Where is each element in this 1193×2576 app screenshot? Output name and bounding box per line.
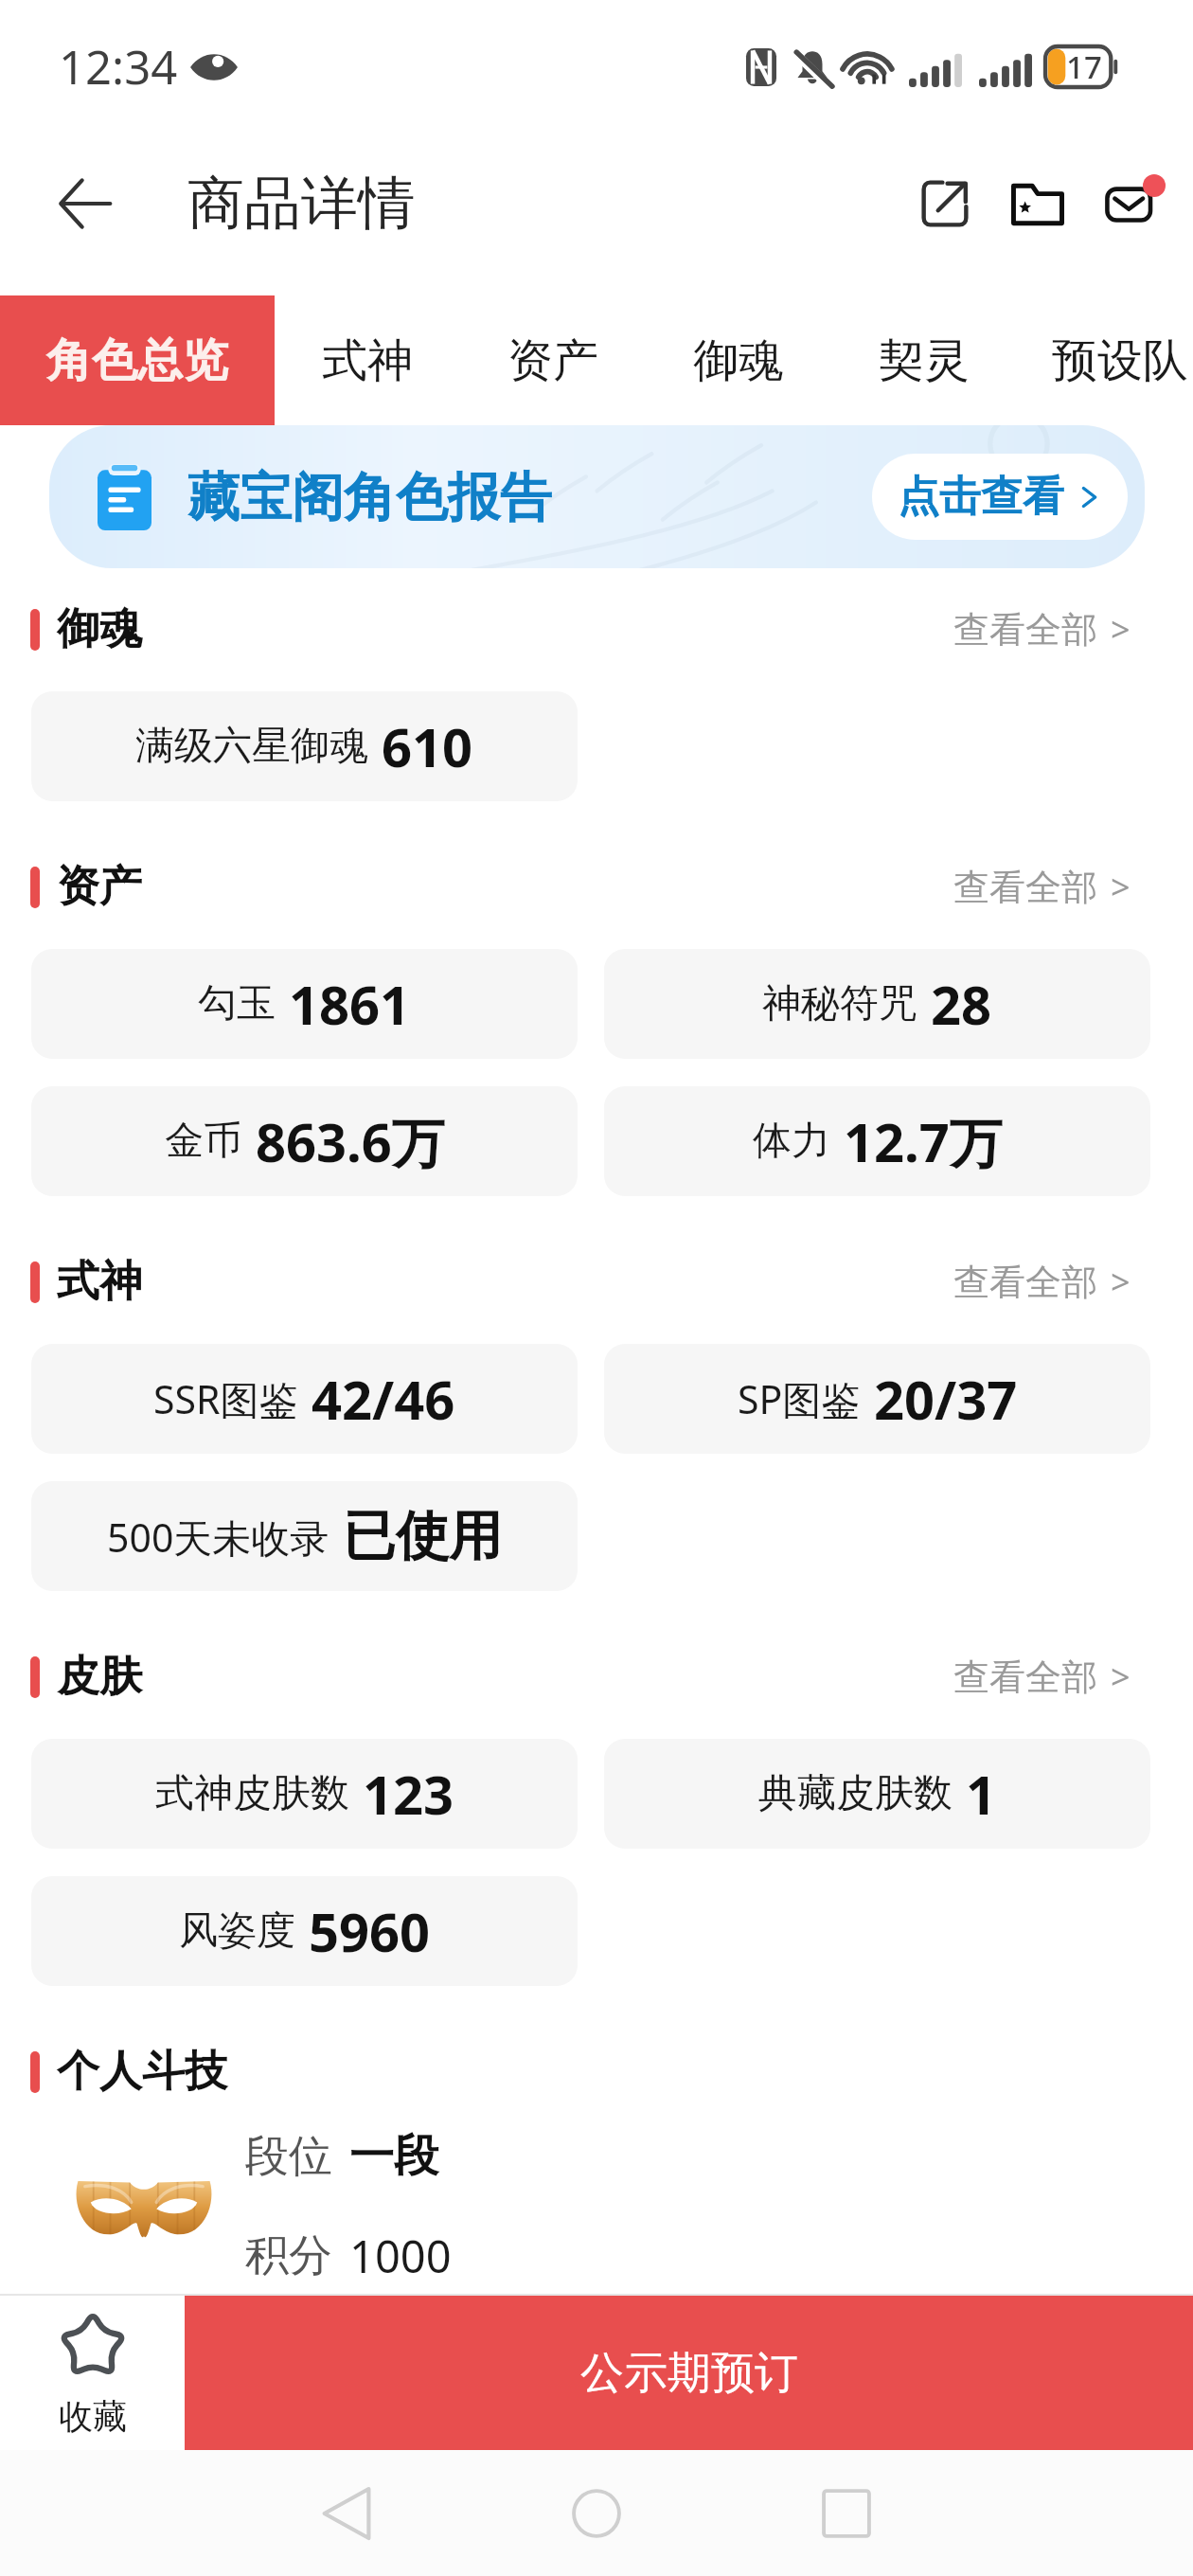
staticText: 藏宝阁角色报告 [187,465,552,530]
staticText: 一段 [349,2128,438,2184]
staticText: > [1111,864,1131,910]
staticText: 点击查看 [898,471,1064,523]
staticText: 式神 [322,332,413,389]
staticText: 1861 [289,968,411,1040]
staticText: 契灵 [879,332,970,389]
staticText: 查看全部 [953,1260,1097,1305]
staticText: 预设队 [1052,332,1188,389]
button[interactable]: SP图鉴 [604,1344,1150,1454]
staticText: 863.6万 [256,1105,445,1177]
staticText: 已使用 [343,1503,502,1570]
staticText: 体力 [753,1117,830,1166]
staticText: 查看全部 [953,865,1097,910]
button[interactable]: SSR图鉴 [31,1344,578,1454]
button[interactable]: Messages [1084,157,1177,250]
button[interactable]: Collection folder [991,157,1084,250]
staticText: 皮肤 [57,1650,142,1704]
button[interactable]: Back [299,2466,394,2561]
button[interactable]: 勾玉 [31,949,578,1059]
staticText: SSR图鉴 [153,1372,298,1425]
button[interactable]: Home [549,2466,644,2561]
button[interactable]: 式神皮肤数 [31,1739,578,1849]
staticText: 个人斗技 [57,2045,227,2099]
button[interactable]: 点击查看 [872,454,1128,540]
staticText: 1000 [349,2226,452,2286]
staticText: 典藏皮肤数 [758,1769,953,1818]
button[interactable]: 查看全部 [953,1259,1131,1305]
button[interactable]: 满级六星御魂 [31,691,578,801]
staticText: 5960 [309,1895,431,1967]
button[interactable]: 预设队 [1017,295,1193,425]
button[interactable]: 风姿度 [31,1876,578,1986]
button[interactable]: 体力 [604,1086,1150,1196]
staticText: 查看全部 [953,607,1097,653]
staticText: 御魂 [57,602,142,656]
staticText: 风姿度 [179,1906,295,1956]
button[interactable]: 角色总览 [0,295,275,425]
staticText: 610 [382,710,473,782]
staticText: 角色总览 [46,332,228,389]
button[interactable]: 查看全部 [953,606,1131,653]
staticText: 12:34 [59,35,178,98]
staticText: > [1111,1259,1131,1305]
staticText: 商品详情 [187,168,415,240]
staticText: 42/46 [312,1363,455,1435]
button[interactable]: 查看全部 [953,864,1131,910]
staticText: 满级六星御魂 [135,722,368,771]
staticText: 段位 [245,2129,332,2184]
button[interactable]: Recent apps [799,2466,894,2561]
button[interactable]: 藏宝阁角色报告 [49,425,1145,568]
button[interactable]: 神秘符咒 [604,949,1150,1059]
staticText: 资产 [57,860,142,914]
staticText: 17 [1066,45,1102,88]
button[interactable]: 资产 [460,295,646,425]
staticText: 积分 [245,2228,332,2283]
button[interactable]: 查看全部 [953,1654,1131,1700]
staticText: 式神 [57,1255,142,1309]
button[interactable]: 500天未收录 [31,1481,578,1591]
button[interactable]: 典藏皮肤数 [604,1739,1150,1849]
staticText: 御魂 [693,332,784,389]
staticText: 12.7万 [844,1105,1003,1177]
staticText: 金币 [165,1117,242,1166]
staticText: 123 [363,1758,454,1830]
button[interactable]: 公示期预订 [185,2296,1193,2450]
staticText: 收藏 [59,2395,127,2438]
button[interactable]: 式神 [275,295,460,425]
staticText: 28 [931,968,992,1040]
staticText: 查看全部 [953,1655,1097,1700]
button[interactable]: 收藏 [0,2296,185,2450]
staticText: SP图鉴 [738,1372,861,1425]
staticText: 500天未收录 [107,1511,329,1564]
staticText: 式神皮肤数 [155,1769,349,1818]
staticText: > [1111,606,1131,653]
button[interactable]: 御魂 [646,295,831,425]
staticText: 资产 [507,332,598,389]
staticText: 公示期预订 [580,2346,798,2401]
button[interactable]: Back [41,159,130,248]
button[interactable]: 契灵 [831,295,1017,425]
staticText: > [1111,1654,1131,1700]
staticText: 神秘符咒 [762,979,917,1029]
button[interactable]: 金币 [31,1086,578,1196]
staticText: 1 [966,1758,997,1830]
button[interactable]: Share [899,157,991,250]
staticText: 勾玉 [198,979,276,1029]
staticText: 20/37 [874,1363,1018,1435]
